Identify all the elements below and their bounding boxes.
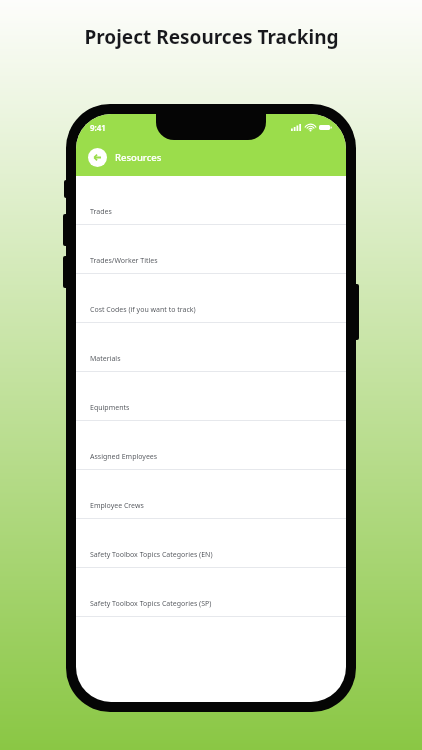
staticText: Employee Crews [90, 501, 144, 511]
button[interactable]: Assigned Employees [76, 421, 346, 470]
staticText: Safety Toolbox Topics Categories (EN) [90, 550, 213, 560]
button[interactable]: Equipments [76, 372, 346, 421]
staticText: Safety Toolbox Topics Categories (SP) [90, 599, 212, 609]
button[interactable]: Safety Toolbox Topics Categories (EN) [76, 519, 346, 568]
staticText: Assigned Employees [90, 452, 158, 462]
staticText: Cost Codes (if you want to track) [90, 305, 196, 315]
staticText: Equipments [90, 403, 130, 413]
staticText: Project Resources Tracking [84, 24, 339, 50]
button[interactable]: Materials [76, 323, 346, 372]
button[interactable]: Trades/Worker Titles [76, 225, 346, 274]
staticText: Trades [90, 207, 112, 217]
staticText: Materials [90, 354, 121, 364]
staticText: Resources [115, 151, 162, 164]
button[interactable]: Safety Toolbox Topics Categories (SP) [76, 568, 346, 617]
button[interactable]: Employee Crews [76, 470, 346, 519]
button[interactable]: Back [88, 148, 107, 167]
button[interactable]: Cost Codes (if you want to track) [76, 274, 346, 323]
button[interactable]: Trades [76, 176, 346, 225]
staticText: Trades/Worker Titles [90, 256, 158, 266]
staticText: 9:41 [90, 122, 106, 133]
